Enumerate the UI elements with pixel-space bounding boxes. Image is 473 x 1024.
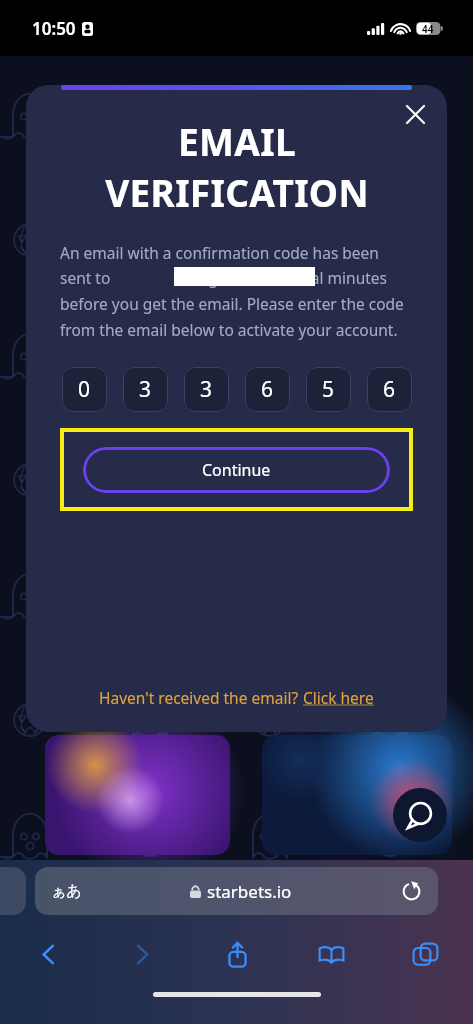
staticText: An email with a confirmation code has be… <box>60 242 413 341</box>
button[interactable]: 3 <box>123 367 168 412</box>
staticText: 3 <box>139 375 152 404</box>
staticText: 0 <box>78 375 91 404</box>
staticText: 5 <box>322 375 335 404</box>
button[interactable]: Click here <box>303 687 374 708</box>
staticText: Click here <box>303 687 374 708</box>
button[interactable]: Tabs <box>401 930 449 978</box>
button[interactable]: Back <box>24 930 72 978</box>
staticText: 3 <box>200 375 213 404</box>
staticText: 44 <box>422 22 434 35</box>
staticText: starbets.io <box>207 880 292 903</box>
staticText: 6 <box>383 375 396 404</box>
staticText: Continue <box>202 459 271 481</box>
button[interactable]: Open chat support <box>393 788 447 842</box>
button[interactable]: Share <box>213 930 261 978</box>
button[interactable]: Forward <box>118 930 166 978</box>
staticText: 6 <box>261 375 274 404</box>
button[interactable]: 3 <box>184 367 229 412</box>
staticText: ぁあ <box>51 882 82 901</box>
button[interactable]: 6 <box>367 367 412 412</box>
button[interactable]: Reload <box>400 880 422 902</box>
button[interactable]: 5 <box>306 367 351 412</box>
staticText: Haven't received the email? <box>99 687 303 708</box>
staticText: 10:50 <box>32 17 76 40</box>
button[interactable]: 0 <box>62 367 107 412</box>
button[interactable]: Close <box>397 96 433 132</box>
button[interactable]: 6 <box>245 367 290 412</box>
button[interactable]: Bookmarks <box>307 930 355 978</box>
staticText: EMAIL VERIFICATION <box>105 116 369 218</box>
button[interactable]: Continue <box>83 447 390 493</box>
button[interactable]: ぁあ <box>35 867 438 915</box>
